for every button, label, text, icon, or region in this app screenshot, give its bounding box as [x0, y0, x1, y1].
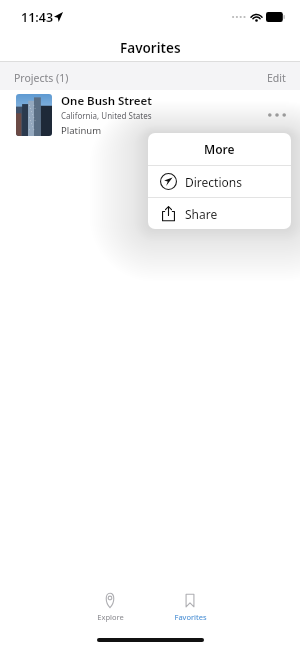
staticText: One Bush Street — [61, 93, 152, 109]
staticText: Platinum — [61, 124, 102, 137]
staticText: Favorites — [120, 39, 181, 57]
staticText: Share — [185, 206, 218, 222]
button[interactable]: Edit — [253, 67, 300, 89]
button[interactable]: More options — [257, 95, 297, 135]
staticText: Explore — [97, 612, 124, 622]
staticText: 11:43 — [21, 9, 54, 26]
staticText: California, United States — [61, 110, 152, 121]
staticText: Directions — [185, 174, 242, 190]
button[interactable]: Explore — [70, 593, 150, 622]
staticText: Projects (1) — [14, 71, 69, 85]
button[interactable]: Favorites — [150, 593, 230, 622]
staticText: Edit — [267, 71, 286, 85]
button[interactable]: Directions — [148, 166, 291, 197]
staticText: More — [204, 141, 235, 157]
button[interactable]: Share — [148, 198, 291, 229]
button[interactable]: One Bush Street — [0, 90, 300, 140]
staticText: Favorites — [174, 612, 207, 622]
